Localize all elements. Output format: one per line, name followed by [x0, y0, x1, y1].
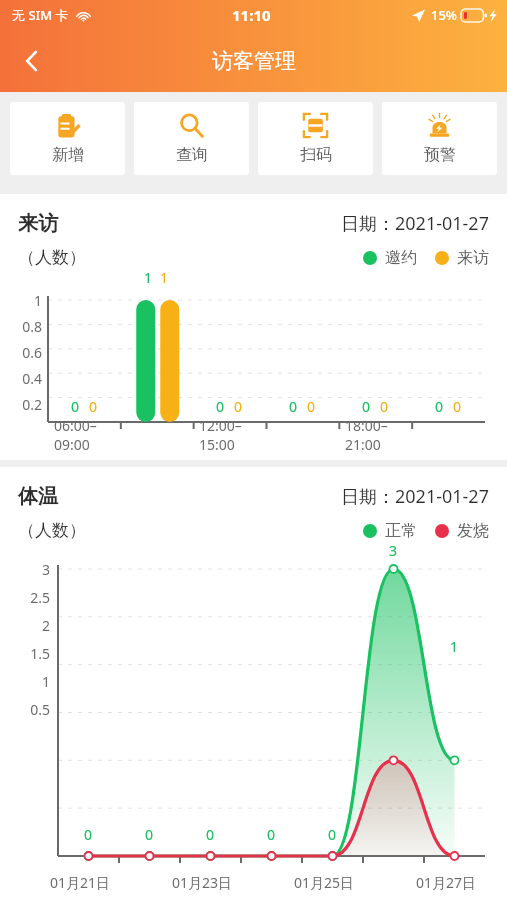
staticText: 12:00–15:00 — [199, 416, 272, 454]
staticText: 06:00–09:00 — [54, 416, 126, 454]
staticText: 15% — [431, 6, 457, 24]
staticText: 18:00–21:00 — [345, 416, 418, 454]
staticText: 0 — [71, 397, 80, 416]
staticText: 01月25日 — [294, 873, 355, 892]
staticText: 1 — [0, 291, 42, 310]
staticText: 3 — [389, 541, 398, 560]
staticText: 0 — [307, 397, 316, 416]
staticText: 0.2 — [0, 395, 42, 414]
staticText: 0 — [328, 825, 337, 844]
staticText: 0 — [453, 397, 462, 416]
staticText: 0 — [84, 825, 93, 844]
staticText: 日期：2021-01-27 — [341, 211, 489, 236]
staticText: 2 — [0, 616, 50, 635]
staticText: 2.5 — [0, 588, 50, 607]
staticText: （人数） — [18, 520, 86, 541]
button[interactable]: 查询 — [134, 102, 249, 175]
staticText: 0 — [216, 397, 225, 416]
staticText: 1 — [0, 672, 50, 691]
staticText: 1 — [450, 637, 459, 656]
button[interactable]: 扫码 — [258, 102, 373, 175]
staticText: 无 SIM 卡 — [12, 6, 69, 24]
staticText: 1 — [144, 268, 153, 287]
staticText: 日期：2021-01-27 — [341, 484, 489, 509]
staticText: 11:10 — [232, 5, 271, 25]
staticText: 0 — [145, 825, 154, 844]
staticText: 01月23日 — [172, 873, 233, 892]
staticText: 扫码 — [300, 145, 332, 165]
staticText: 预警 — [424, 145, 456, 165]
staticText: 来访 — [18, 211, 58, 236]
button[interactable]: 预警 — [382, 102, 497, 175]
staticText: 0 — [89, 397, 98, 416]
staticText: 发烧 — [457, 521, 489, 541]
staticText: （人数） — [18, 247, 86, 268]
staticText: 0.8 — [0, 317, 42, 336]
button[interactable]: Back — [6, 35, 58, 87]
staticText: 体温 — [18, 484, 58, 509]
staticText: 0 — [234, 397, 243, 416]
staticText: 3 — [0, 560, 50, 579]
staticText: 0 — [289, 397, 298, 416]
staticText: 邀约 — [385, 248, 417, 268]
staticText: 0 — [267, 825, 276, 844]
staticText: 0 — [206, 825, 215, 844]
staticText: 来访 — [457, 248, 489, 268]
button[interactable]: 新增 — [10, 102, 125, 175]
staticText: 正常 — [385, 521, 417, 541]
staticText: 新增 — [52, 145, 84, 165]
staticText: 0 — [380, 397, 389, 416]
staticText: 0.6 — [0, 343, 42, 362]
staticText: 0.4 — [0, 369, 42, 388]
staticText: 访客管理 — [212, 48, 296, 74]
staticText: 01月21日 — [50, 873, 111, 892]
staticText: 0.5 — [0, 700, 50, 719]
staticText: 0 — [435, 397, 444, 416]
staticText: 查询 — [176, 145, 208, 165]
staticText: 01月27日 — [416, 873, 477, 892]
staticText: 1.5 — [0, 644, 50, 663]
staticText: 1 — [160, 268, 169, 287]
staticText: 0 — [362, 397, 371, 416]
